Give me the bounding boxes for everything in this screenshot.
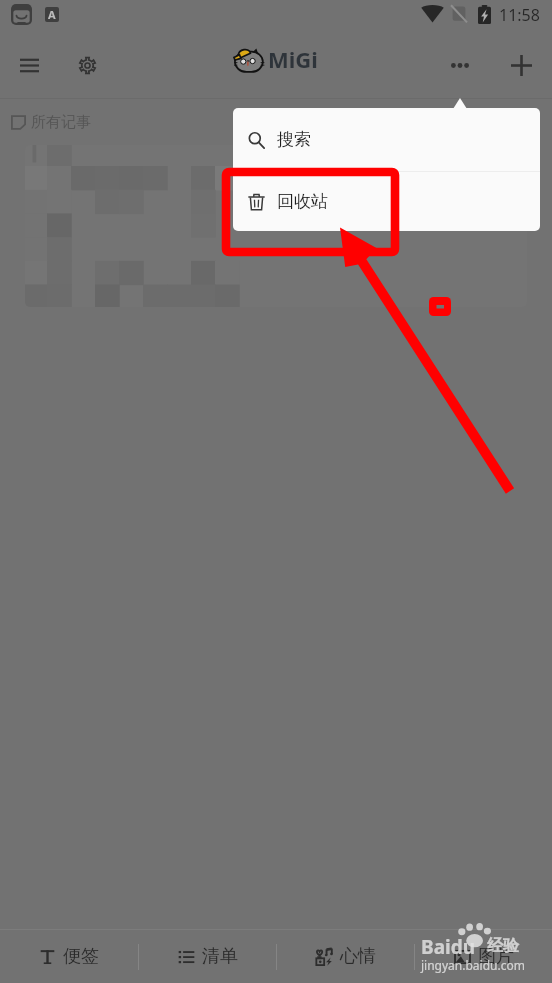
staticText: 图片 [478,945,514,968]
button[interactable] [25,145,527,307]
staticText: jingyan.baidu.com [421,957,525,973]
staticText: 清单 [202,945,238,968]
button[interactable]: More options [439,44,481,86]
staticText: 心情 [340,945,376,968]
button[interactable]: 清单 [139,930,276,983]
button[interactable]: 回收站 [233,172,540,231]
staticText: Baidu [421,934,476,960]
button[interactable]: 心情 [277,930,414,983]
staticText: A [48,7,56,22]
staticText: 所有记事 [31,113,91,132]
button[interactable]: 便签 [0,930,138,983]
staticText: 11:58 [499,4,540,26]
staticText: MiGi [268,44,318,74]
staticText: 回收站 [277,191,328,212]
button[interactable]: 图片 [415,930,552,983]
button[interactable]: Navigation menu [8,44,51,87]
staticText: 搜索 [277,129,311,150]
button[interactable]: Settings [66,44,109,87]
button[interactable]: 搜索 [233,108,540,171]
staticText: 经验 [487,936,519,956]
staticText: 便签 [63,945,99,968]
button[interactable]: Add new note [500,44,542,86]
